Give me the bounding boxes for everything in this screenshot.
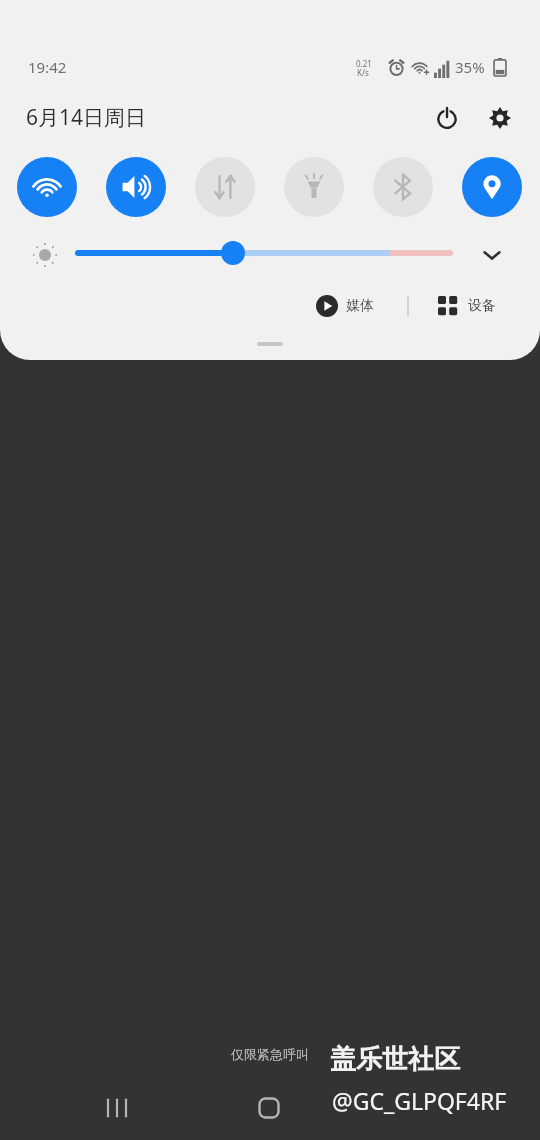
staticText: 仅限紧急呼叫 bbox=[231, 1046, 309, 1062]
button[interactable]: Recent apps bbox=[82, 1080, 152, 1136]
staticText: 0.21 bbox=[356, 58, 372, 69]
button[interactable]: Mobile data bbox=[195, 157, 255, 217]
button[interactable]: Collapse panel bbox=[248, 336, 292, 352]
button[interactable]: Settings bbox=[478, 96, 522, 140]
button[interactable]: 设备 bbox=[434, 288, 514, 324]
button[interactable]: Expand bbox=[470, 233, 514, 277]
staticText: K/s bbox=[357, 67, 369, 78]
button[interactable]: Location bbox=[462, 157, 522, 217]
staticText: 设备 bbox=[468, 297, 496, 315]
button[interactable]: Power bbox=[425, 96, 469, 140]
button[interactable]: Brightness bbox=[70, 236, 460, 270]
button[interactable]: Sound bbox=[106, 157, 166, 217]
staticText: 媒体 bbox=[346, 297, 374, 315]
staticText: 盖乐世社区 bbox=[330, 1043, 460, 1076]
button[interactable]: Bluetooth bbox=[373, 157, 433, 217]
button[interactable]: Wi-Fi bbox=[17, 157, 77, 217]
staticText: 6月14日周日 bbox=[26, 103, 147, 132]
button[interactable]: Flashlight bbox=[284, 157, 344, 217]
staticText: @GC_GLPQF4RF bbox=[332, 1085, 507, 1116]
staticText: 35% bbox=[455, 57, 485, 77]
button[interactable]: 媒体 bbox=[310, 288, 382, 324]
staticText: 19:42 bbox=[28, 57, 67, 77]
button[interactable]: Home bbox=[234, 1080, 304, 1136]
